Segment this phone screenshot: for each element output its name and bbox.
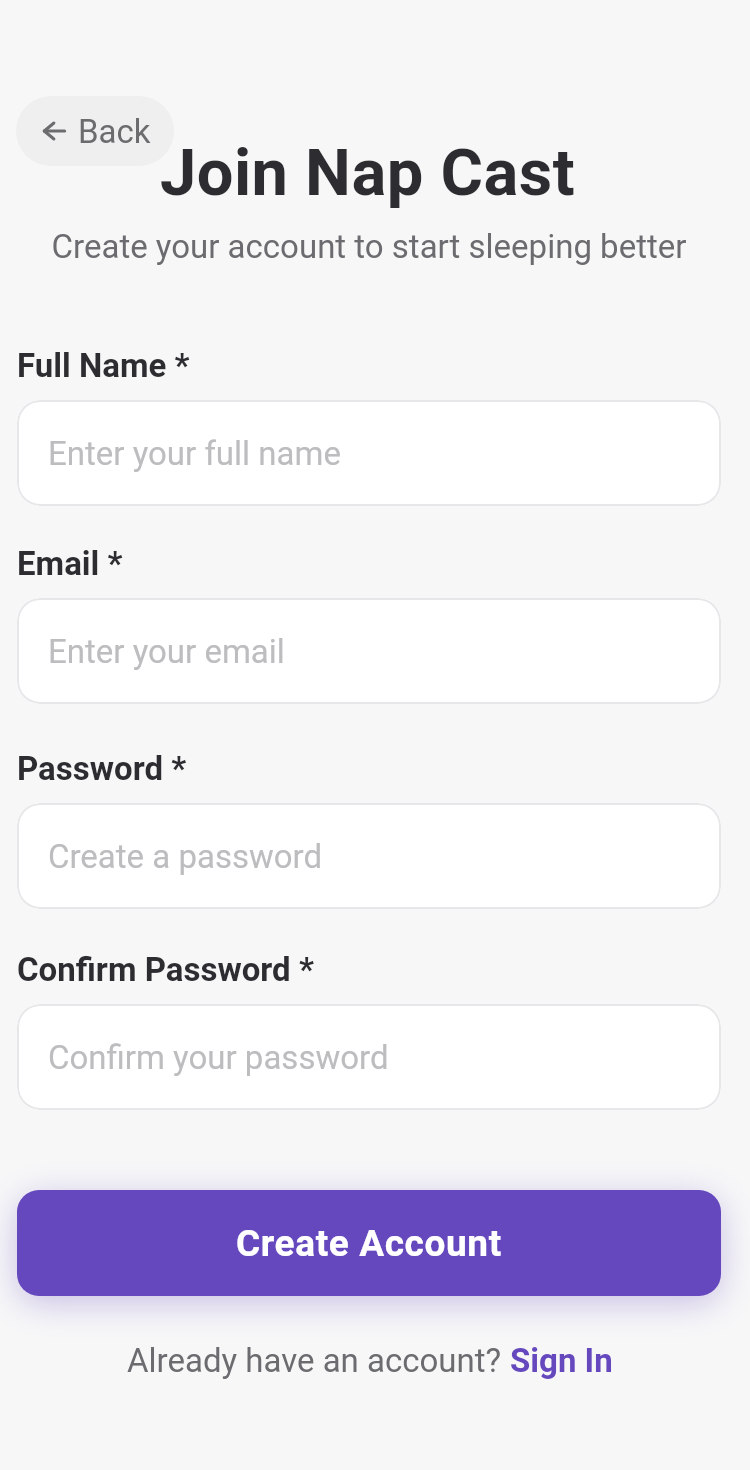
staticText: Email * — [17, 544, 123, 583]
staticText: Back — [78, 112, 151, 151]
staticText: Enter your full name — [48, 434, 341, 473]
button[interactable]: Enter your full name — [17, 400, 721, 506]
button[interactable]: Enter your email — [17, 598, 721, 704]
staticText: Confirm your password — [48, 1038, 389, 1077]
button[interactable]: Create a password — [17, 803, 721, 909]
button[interactable]: Create Account — [17, 1190, 721, 1296]
staticText: Full Name * — [17, 346, 190, 385]
staticText: Create a password — [48, 837, 323, 876]
staticText: Already have an account? — [127, 1341, 510, 1380]
button[interactable]: Confirm your password — [17, 1004, 721, 1110]
button[interactable]: Sign In — [510, 1341, 613, 1380]
staticText: Confirm Password * — [17, 950, 314, 989]
staticText: Password * — [17, 749, 187, 788]
other: Back — [42, 119, 66, 143]
staticText: Create Account — [236, 1222, 502, 1265]
staticText: Enter your email — [48, 632, 285, 671]
button[interactable]: Back — [16, 96, 174, 166]
staticText: Create your account to start sleeping be… — [0, 227, 738, 266]
staticText: Join Nap Cast — [0, 135, 735, 211]
